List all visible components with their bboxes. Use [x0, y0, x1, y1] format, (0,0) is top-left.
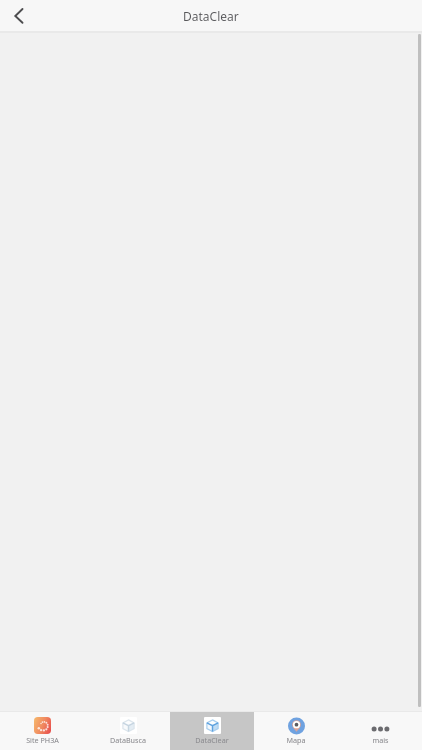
button[interactable]: Mapa — [254, 712, 338, 750]
staticText: Mapa — [286, 735, 306, 745]
button[interactable]: Back — [0, 0, 40, 31]
staticText: Site PH3A — [26, 735, 59, 745]
staticText: DataClear — [183, 8, 239, 24]
button[interactable]: DataBusca — [85, 712, 170, 750]
button[interactable]: mais — [338, 712, 422, 750]
staticText: DataClear — [195, 735, 229, 745]
button[interactable]: Site PH3A — [0, 712, 85, 750]
button[interactable]: DataClear — [170, 712, 254, 750]
staticText: mais — [372, 735, 389, 745]
staticText: DataBusca — [110, 735, 146, 745]
